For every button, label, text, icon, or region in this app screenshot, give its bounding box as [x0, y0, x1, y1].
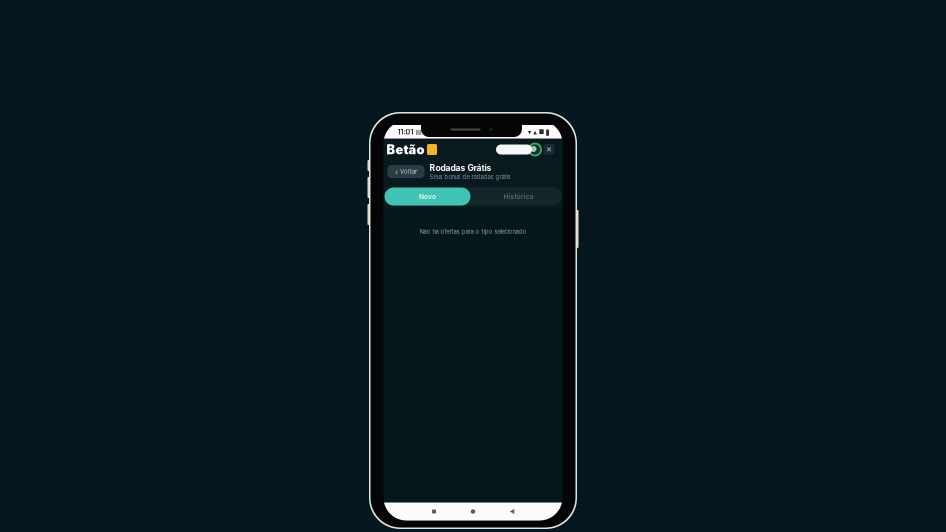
staticText: 11:01 — [397, 128, 413, 136]
button[interactable]: Fechar — [543, 144, 554, 155]
button[interactable]: Início — [463, 502, 482, 520]
staticText: Seus bônus de rodadas grátis — [429, 173, 510, 180]
staticText: Não há ofertas para o tipo selecionado — [419, 228, 526, 235]
button[interactable]: Voltar — [502, 502, 521, 520]
staticText: ▮ — [545, 127, 549, 137]
button[interactable]: Recentes — [424, 502, 443, 520]
staticText: Histórico — [503, 192, 533, 201]
staticText: ■ — [539, 128, 544, 136]
staticText: ▾ — [528, 128, 532, 136]
staticText: Novo — [419, 192, 436, 201]
staticText: Rodadas Grátis — [429, 163, 491, 173]
staticText: ▤ — [415, 128, 421, 136]
staticText: ‹ — [395, 167, 398, 176]
button[interactable]: Histórico — [475, 187, 561, 205]
button[interactable]: Betão — [386, 142, 437, 157]
staticText: ✕ — [546, 145, 552, 154]
button[interactable]: Saldo — [495, 142, 542, 156]
staticText: ▴ — [533, 128, 537, 136]
button[interactable]: Novo — [384, 187, 470, 205]
staticText: Voltar — [400, 168, 417, 175]
button[interactable]: ‹ — [387, 165, 424, 178]
staticText: Betão — [386, 142, 424, 157]
